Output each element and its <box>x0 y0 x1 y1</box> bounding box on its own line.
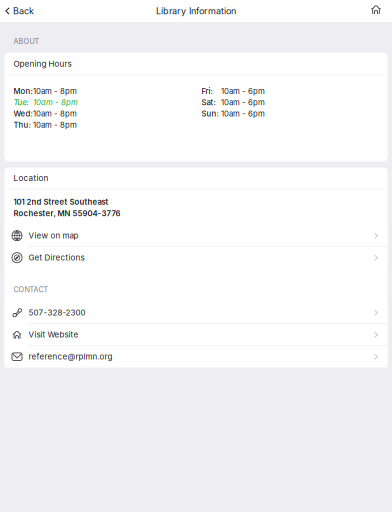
staticText: 101 2nd Street Southeast <box>13 197 108 207</box>
staticText: 507-328-2300 <box>28 308 85 317</box>
staticText: 10am - 6pm <box>221 98 265 107</box>
button[interactable]: Visit Website <box>4 324 387 345</box>
staticText: ABOUT <box>13 37 39 46</box>
staticText: 10am - 6pm <box>221 109 265 118</box>
staticText: Mon: <box>13 86 32 96</box>
staticText: Location <box>13 173 48 183</box>
staticText: 10am - 8pm <box>33 120 77 130</box>
staticText: Thu: <box>13 120 30 130</box>
button[interactable]: 507-328-2300 <box>4 302 387 323</box>
staticText: CONTACT <box>13 285 48 294</box>
button[interactable]: View on map <box>4 225 387 246</box>
staticText: Get Directions <box>28 253 84 262</box>
staticText: Back <box>13 5 34 16</box>
button[interactable]: Get Directions <box>4 247 387 268</box>
button[interactable]: Back <box>0 0 41 21</box>
staticText: Library Information <box>156 5 236 16</box>
staticText: Visit Website <box>28 330 78 339</box>
staticText: 10am - 8pm <box>33 98 78 107</box>
button[interactable]: Home <box>363 1 392 20</box>
staticText: Fri: <box>201 86 212 96</box>
staticText: 10am - 8pm <box>33 86 77 96</box>
button[interactable]: reference@rplmn.org <box>4 346 387 367</box>
staticText: Tue: <box>13 98 28 107</box>
staticText: View on map <box>28 231 78 240</box>
staticText: Rochester, MN 55904-3776 <box>13 209 120 218</box>
staticText: Sat: <box>201 98 215 107</box>
staticText: 10am - 8pm <box>33 109 77 118</box>
staticText: Wed: <box>13 109 32 118</box>
staticText: Sun: <box>201 109 218 118</box>
staticText: 10am - 6pm <box>221 86 265 96</box>
staticText: reference@rplmn.org <box>28 352 112 361</box>
staticText: Opening Hours <box>13 59 71 69</box>
